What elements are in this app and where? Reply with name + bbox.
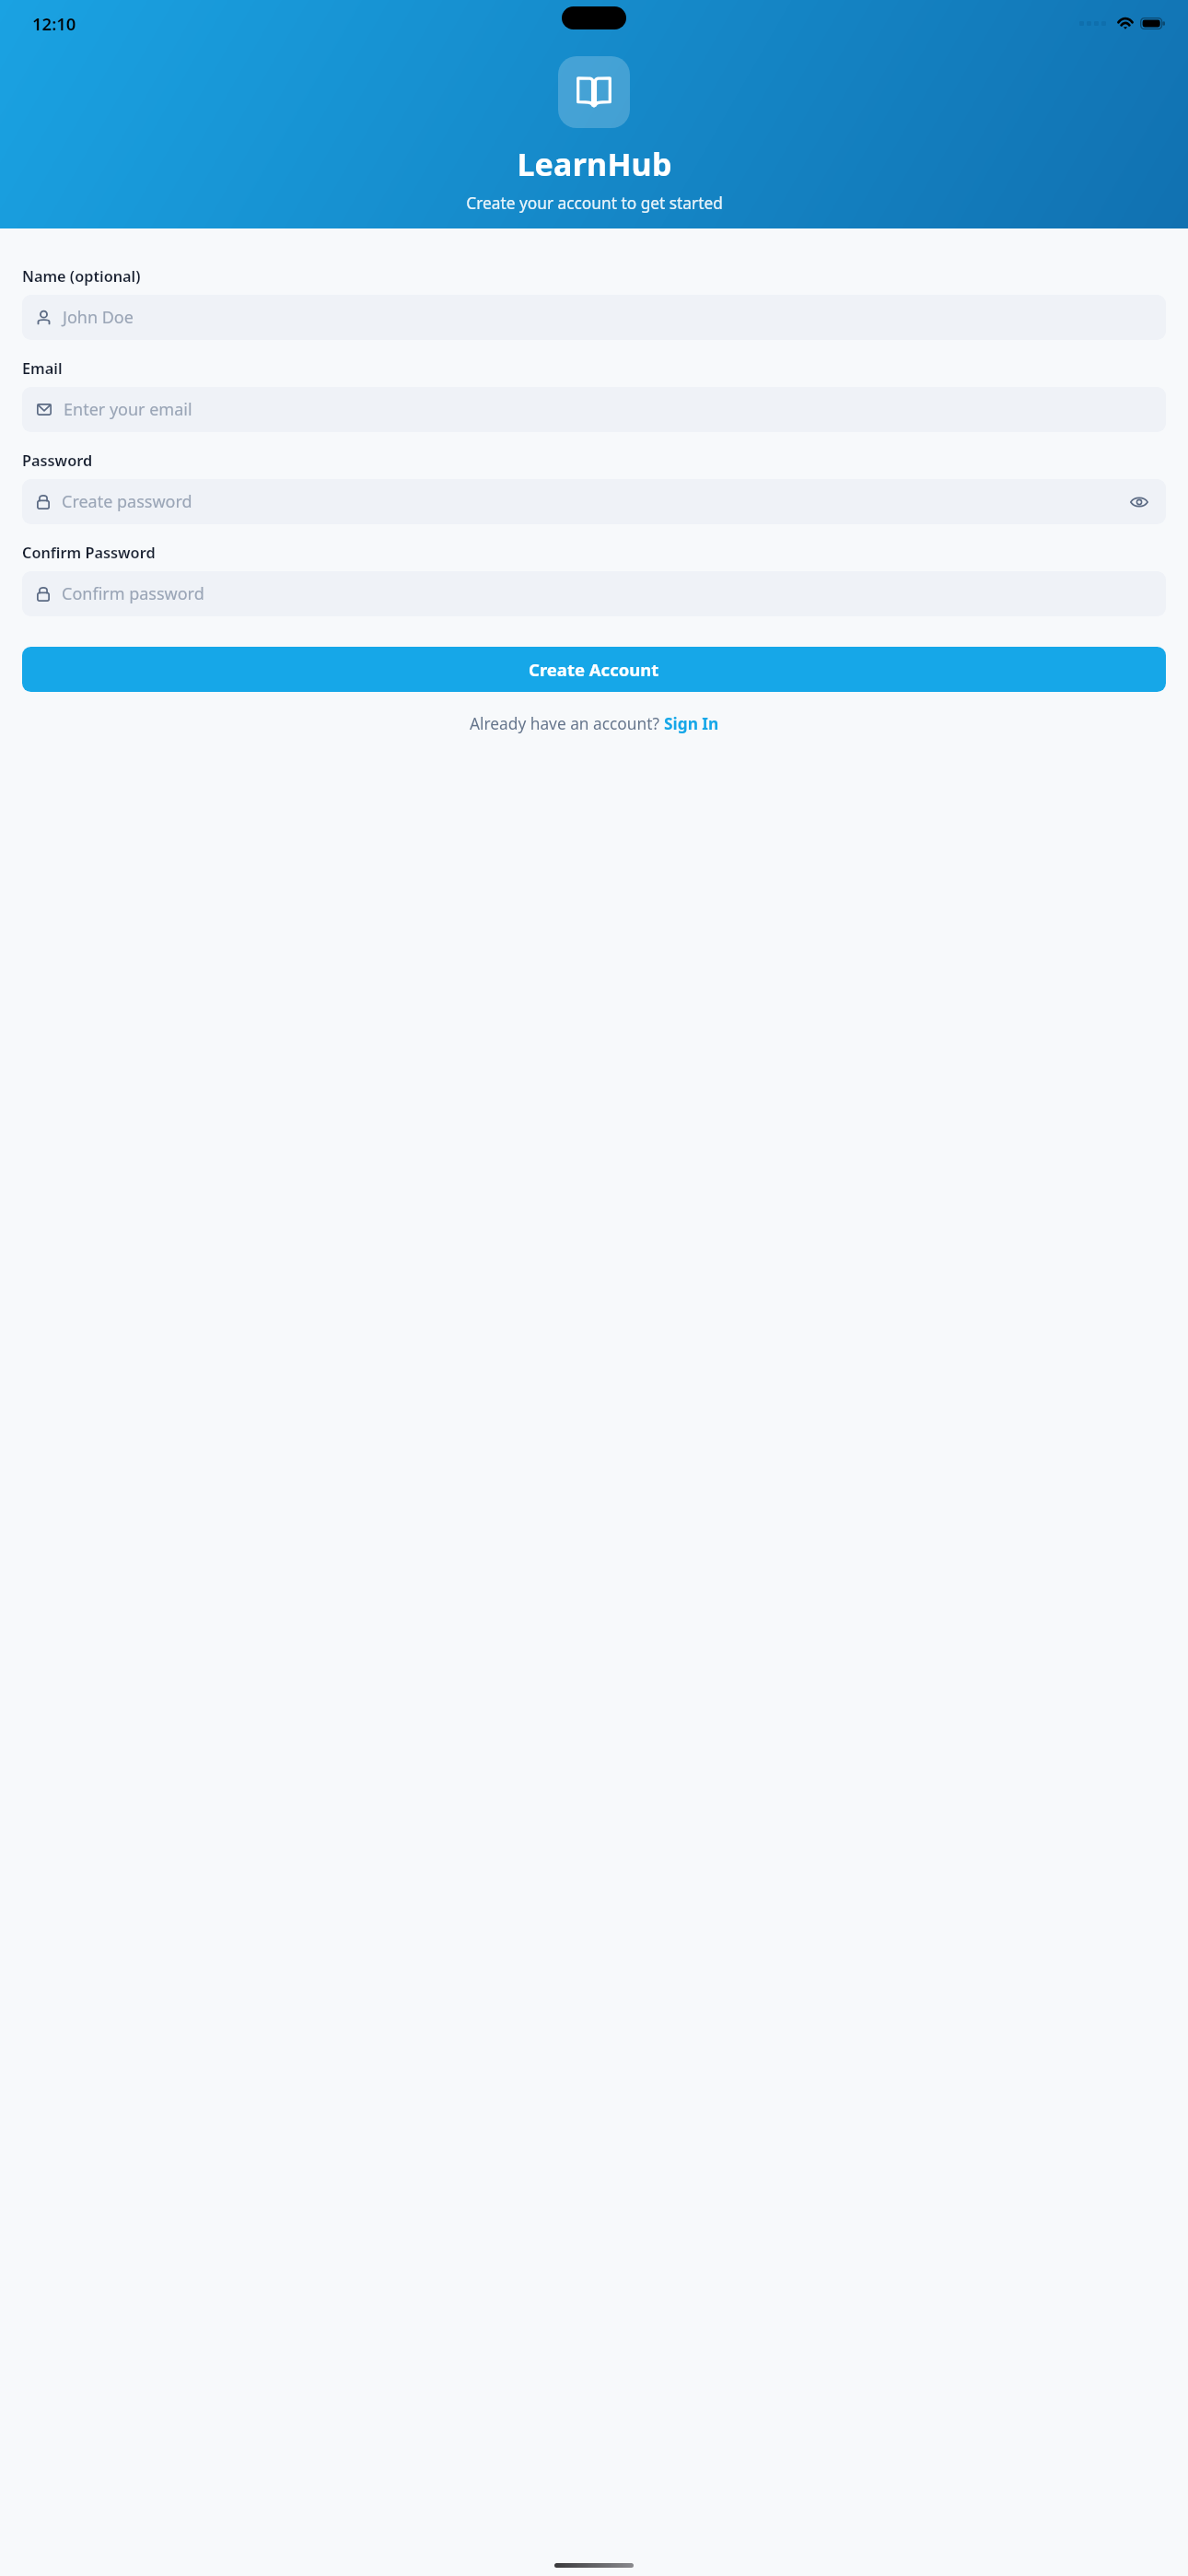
button[interactable]: Create password	[22, 479, 1166, 524]
staticText: Sign In	[664, 713, 719, 735]
staticText: 12:10	[32, 12, 76, 35]
staticText: Password	[22, 451, 93, 471]
staticText: Confirm Password	[22, 543, 156, 563]
staticText: John Doe	[63, 306, 1151, 329]
button[interactable]: Create Account	[22, 647, 1166, 692]
staticText: LearnHub	[517, 143, 672, 185]
staticText: Create password	[62, 490, 1127, 513]
staticText: Enter your email	[64, 398, 1151, 421]
button[interactable]: Enter your email	[22, 387, 1166, 432]
staticText: Email	[22, 358, 63, 379]
button[interactable]: Show password	[1127, 490, 1151, 514]
staticText: Confirm password	[62, 582, 1151, 605]
staticText: Name (optional)	[22, 266, 141, 287]
staticText: Already have an account?	[470, 713, 664, 735]
staticText: Create your account to get started	[466, 193, 723, 215]
button[interactable]: Confirm password	[22, 571, 1166, 616]
staticText: Create Account	[529, 658, 659, 681]
button[interactable]: John Doe	[22, 295, 1166, 340]
button[interactable]: Sign In	[664, 713, 719, 735]
